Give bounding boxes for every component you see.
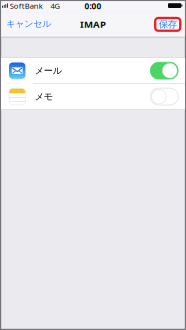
button[interactable]: キャンセル — [1, 12, 56, 37]
button[interactable]: メモ — [1, 84, 185, 109]
staticText: SoftBank — [10, 1, 43, 11]
staticText: IMAP — [80, 17, 106, 30]
staticText: メール — [35, 65, 62, 76]
staticText: キャンセル — [6, 18, 51, 29]
staticText: 4G — [50, 1, 60, 11]
button[interactable]: メール — [1, 58, 185, 83]
staticText: メモ — [35, 91, 53, 102]
staticText: 0:00 — [84, 0, 101, 12]
staticText: 保存 — [159, 18, 177, 30]
button[interactable]: 保存 — [155, 12, 185, 37]
